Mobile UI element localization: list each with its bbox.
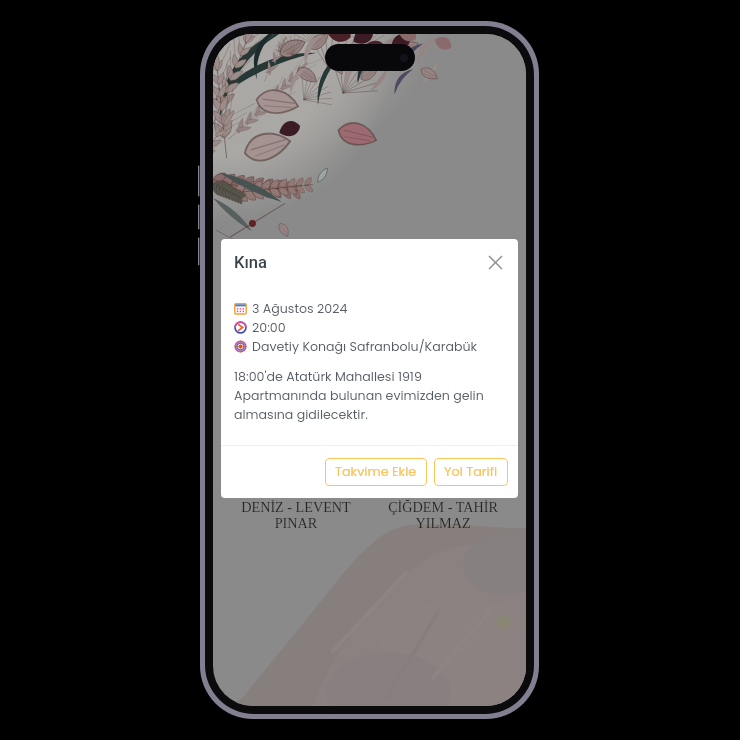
staticText: Yol Tarifi xyxy=(444,463,498,481)
button[interactable]: Takvime Ekle xyxy=(325,458,427,486)
staticText: Davetiy Konağı Safranbolu/Karabük xyxy=(252,338,477,356)
staticText: Takvime Ekle xyxy=(335,463,417,481)
button[interactable]: Yol Tarifi xyxy=(434,458,508,486)
staticText: 20:00 xyxy=(252,319,286,337)
staticText: 3 Ağustos 2024 xyxy=(252,300,348,318)
staticText: Kına xyxy=(234,253,268,272)
staticText: DENİZ - LEVENT PINAR xyxy=(241,499,351,531)
staticText: 18:00'de Atatürk Mahallesi 1919 Apartman… xyxy=(234,368,505,423)
staticText: ÇİĞDEM - TAHİR YILMAZ xyxy=(388,499,498,531)
button[interactable]: Kapat xyxy=(482,249,508,275)
